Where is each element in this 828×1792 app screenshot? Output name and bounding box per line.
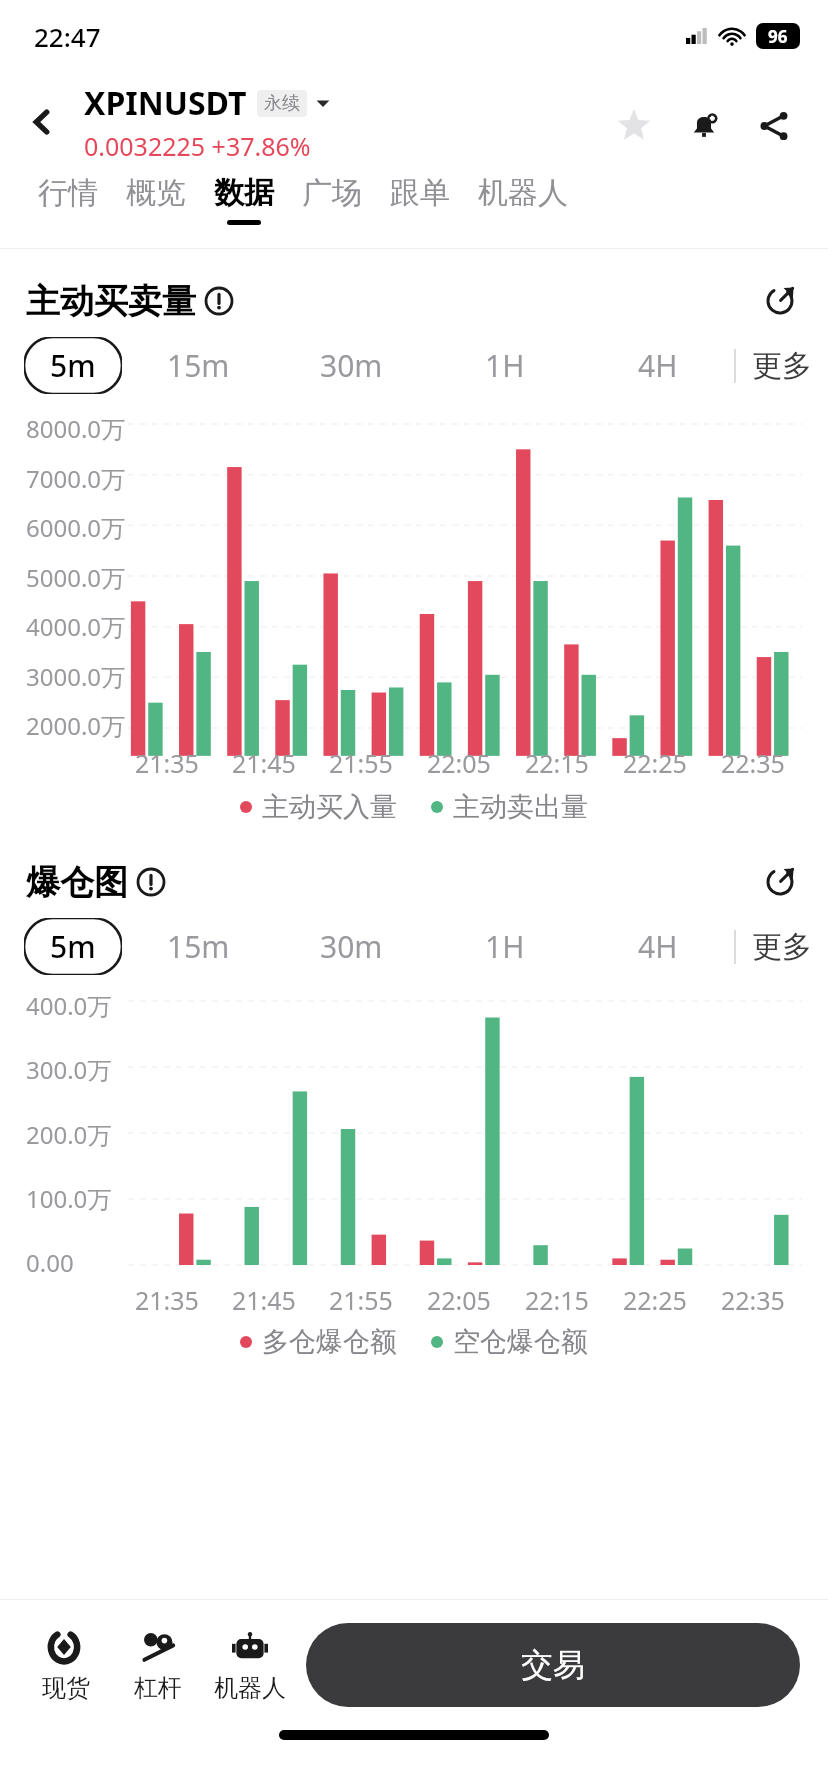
button[interactable]: Expand	[758, 860, 802, 904]
button[interactable]: 1H	[428, 345, 581, 386]
staticText: 21:45	[232, 1283, 296, 1317]
staticText: 5000.0万	[26, 561, 126, 594]
staticText: 4000.0万	[26, 610, 126, 643]
button[interactable]: 机器人	[204, 1621, 296, 1709]
staticText: 4H	[638, 345, 678, 386]
button[interactable]: 更多	[736, 928, 828, 966]
staticText: 22:25	[623, 746, 687, 780]
staticText: 22:35	[721, 1283, 785, 1317]
staticText: 200.0万	[26, 1118, 112, 1151]
button[interactable]: 30m	[275, 345, 428, 386]
staticText: 1H	[485, 926, 525, 967]
staticText: 交易	[521, 1645, 585, 1685]
button[interactable]: More	[315, 95, 331, 111]
staticText: 数据	[214, 174, 274, 212]
staticText: 杠杆	[134, 1673, 182, 1703]
button[interactable]: 现货	[20, 1621, 112, 1709]
staticText: 行情	[38, 174, 98, 212]
staticText: 机器人	[478, 174, 568, 212]
staticText: 15m	[167, 926, 230, 967]
staticText: 22:35	[721, 746, 785, 780]
button[interactable]: Share	[746, 98, 802, 154]
button[interactable]: 机器人	[464, 174, 582, 220]
staticText: 跟单	[390, 174, 450, 212]
staticText: 400.0万	[26, 989, 112, 1022]
staticText: 5m	[50, 926, 96, 967]
staticText: 更多	[752, 347, 812, 385]
staticText: 6000.0万	[26, 511, 126, 544]
button[interactable]: 4H	[581, 926, 734, 967]
staticText: 3000.0万	[26, 660, 126, 693]
staticText: 30m	[320, 926, 383, 967]
button[interactable]: 4H	[581, 345, 734, 386]
button[interactable]: 数据	[200, 174, 288, 225]
staticText: 多仓爆仓额	[262, 1325, 397, 1359]
staticText: 永续	[264, 92, 300, 115]
staticText: 广场	[302, 174, 362, 212]
staticText: 22:05	[427, 1283, 491, 1317]
button[interactable]: 行情	[24, 174, 112, 220]
staticText: 更多	[752, 928, 812, 966]
staticText: 96	[768, 25, 788, 48]
button[interactable]: 5m	[24, 337, 122, 394]
button[interactable]: 杠杆	[112, 1621, 204, 1709]
staticText: 0.0032225 +37.86%	[84, 129, 311, 163]
staticText: 21:45	[232, 746, 296, 780]
staticText: 22:05	[427, 746, 491, 780]
button[interactable]: 交易	[306, 1623, 800, 1707]
button[interactable]: Expand	[758, 279, 802, 323]
staticText: XPINUSDT	[84, 81, 247, 125]
staticText: 概览	[126, 174, 186, 212]
staticText: 21:35	[135, 746, 199, 780]
staticText: 4H	[638, 926, 678, 967]
staticText: 21:55	[329, 746, 393, 780]
button[interactable]: Back	[14, 94, 70, 150]
button[interactable]: 15m	[122, 345, 275, 386]
staticText: 8000.0万	[26, 412, 126, 445]
staticText: 现货	[42, 1673, 90, 1703]
staticText: 空仓爆仓额	[453, 1325, 588, 1359]
staticText: 22:15	[525, 1283, 589, 1317]
staticText: 100.0万	[26, 1182, 112, 1215]
staticText: 2000.0万	[26, 709, 126, 742]
staticText: 5m	[50, 345, 96, 386]
button[interactable]: 广场	[288, 174, 376, 220]
button[interactable]: Info	[204, 286, 234, 316]
button[interactable]: 1H	[428, 926, 581, 967]
staticText: 主动卖出量	[453, 790, 588, 824]
staticText: 21:55	[329, 1283, 393, 1317]
staticText: 爆仓图	[26, 861, 128, 904]
staticText: 30m	[320, 345, 383, 386]
button[interactable]: Favorite	[606, 98, 662, 154]
staticText: 22:47	[34, 19, 101, 54]
staticText: 22:25	[623, 1283, 687, 1317]
staticText: 1H	[485, 345, 525, 386]
button[interactable]: 跟单	[376, 174, 464, 220]
button[interactable]: 概览	[112, 174, 200, 220]
button[interactable]: 5m	[24, 918, 122, 975]
button[interactable]: 更多	[736, 347, 828, 385]
button[interactable]: Alerts	[676, 98, 732, 154]
staticText: 21:35	[135, 1283, 199, 1317]
staticText: 主动买入量	[262, 790, 397, 824]
button[interactable]: 30m	[275, 926, 428, 967]
staticText: 300.0万	[26, 1053, 112, 1086]
staticText: 0.00	[26, 1246, 74, 1279]
button[interactable]: Info	[136, 867, 166, 897]
staticText: 主动买卖量	[26, 280, 196, 323]
button[interactable]: 15m	[122, 926, 275, 967]
staticText: 7000.0万	[26, 462, 126, 495]
staticText: 机器人	[214, 1673, 286, 1703]
staticText: 22:15	[525, 746, 589, 780]
staticText: 15m	[167, 345, 230, 386]
